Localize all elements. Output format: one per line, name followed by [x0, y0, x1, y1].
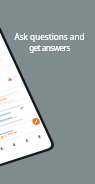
staticText: get answers — [29, 42, 70, 53]
staticText: Ask questions and — [14, 31, 85, 42]
